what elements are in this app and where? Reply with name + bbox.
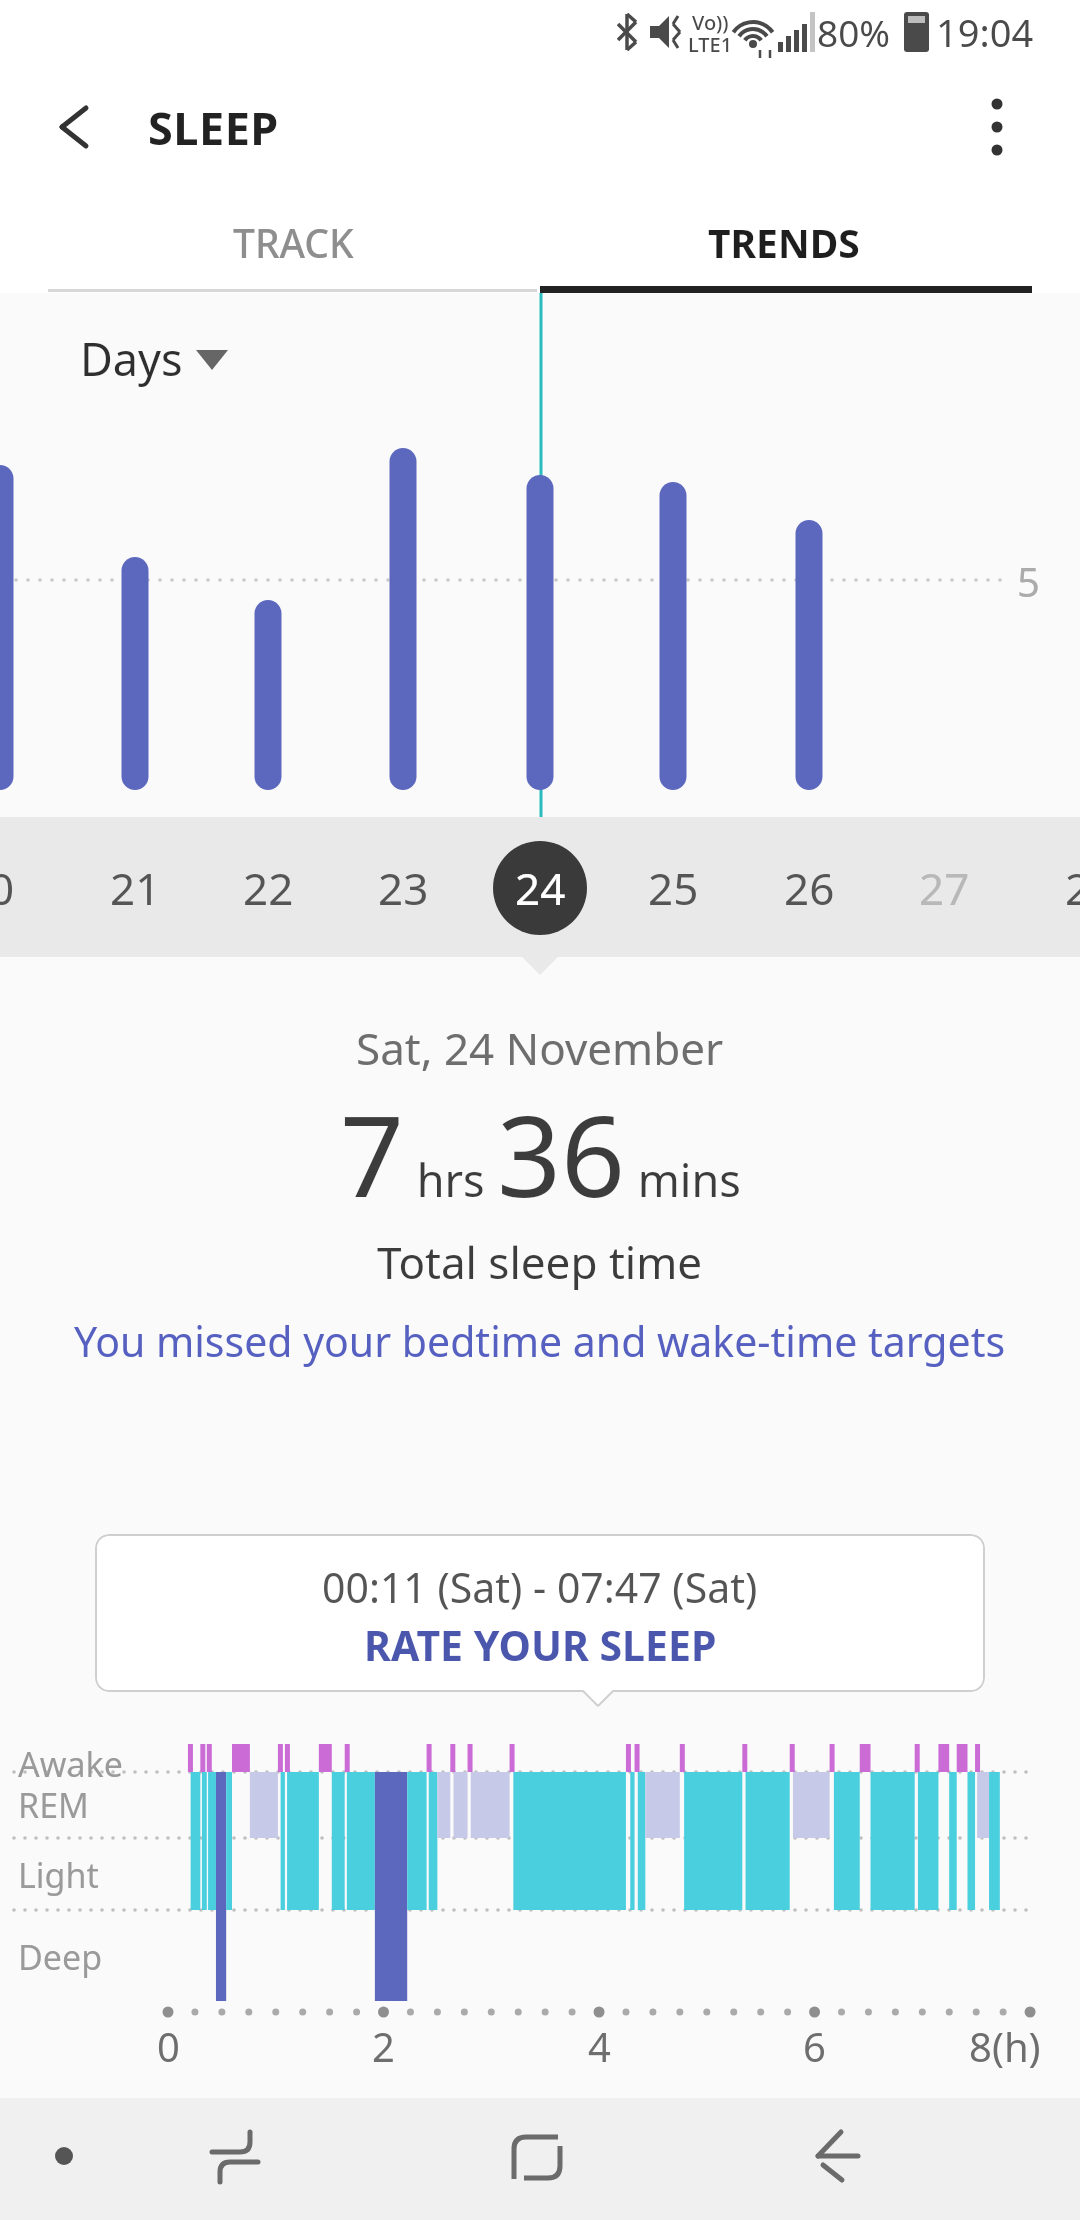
staticText: 23 [378,858,429,918]
staticText: TRACK [233,216,354,269]
staticText: 25 [648,858,699,918]
staticText: 5 [1017,554,1040,608]
button[interactable] [40,95,104,159]
staticText: Sat, 24 November [356,1018,724,1078]
button[interactable] [95,1534,985,1692]
staticText: Awake [18,1741,123,1787]
button[interactable]: 22 [0,808,618,968]
staticText: 2 [372,2019,395,2073]
staticText: 22 [243,858,294,918]
staticText: LTE1 [688,31,733,58]
staticText: 27 [919,858,970,918]
button[interactable]: 21 [0,808,485,968]
staticText: 36 [497,1077,626,1230]
button[interactable] [965,95,1029,159]
staticText: 21 [110,858,161,918]
staticText: REM [18,1782,89,1828]
staticText: 4 [588,2019,611,2073]
button[interactable] [24,2116,104,2196]
staticText: 26 [784,858,835,918]
button[interactable]: 27 [594,808,1080,968]
staticText: RATE YOUR SLEEP [364,1617,717,1673]
staticText: 2 [1065,858,1080,918]
staticText: TRENDS [708,216,860,269]
staticText: 8(h) [969,2019,1041,2073]
staticText: 80% [817,7,891,57]
staticText: 7 [340,1077,405,1230]
button[interactable] [497,2116,583,2202]
staticText: 0 [157,2019,180,2073]
staticText: SLEEP [148,97,279,158]
button[interactable] [195,2116,275,2196]
button[interactable] [60,320,240,396]
staticText: 6 [803,2019,826,2073]
staticText: Days [80,328,183,389]
staticText: Light [18,1852,99,1898]
staticText: hrs [405,1149,497,1210]
button[interactable]: TRACK [0,162,643,322]
staticText: Total sleep time [377,1232,703,1292]
staticText: 00:11 (Sat) - 07:47 (Sat) [322,1559,758,1615]
staticText: 24 [515,858,566,918]
staticText: 19:04 [936,6,1034,58]
button[interactable]: TRENDS [434,162,1080,322]
staticText: 0 [0,858,15,918]
staticText: Deep [18,1934,103,1980]
staticText: Vo)) [692,9,729,36]
button[interactable]: 25 [323,808,1023,968]
button[interactable]: 24 [190,808,890,968]
button[interactable]: 23 [53,808,753,968]
staticText: You missed your bedtime and wake-time ta… [74,1313,1006,1369]
staticText: mins [626,1149,741,1210]
button[interactable]: 26 [459,808,1080,968]
button[interactable] [790,2116,876,2202]
